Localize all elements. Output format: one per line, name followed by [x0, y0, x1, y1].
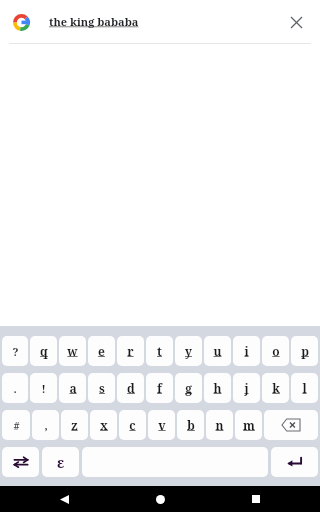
button[interactable]: Backspace	[264, 410, 318, 440]
button[interactable]: t	[146, 336, 173, 366]
button[interactable]: p	[291, 336, 318, 366]
staticText: n	[215, 417, 224, 433]
button[interactable]: ?	[2, 336, 28, 366]
staticText: l	[302, 380, 307, 396]
staticText: x	[100, 417, 108, 433]
button[interactable]: d	[117, 373, 144, 403]
staticText: z	[71, 417, 78, 433]
button[interactable]: y	[175, 336, 202, 366]
button[interactable]: m	[235, 410, 262, 440]
button[interactable]: h	[204, 373, 231, 403]
staticText: c	[129, 417, 136, 433]
staticText: t	[157, 343, 162, 359]
staticText: .	[13, 381, 17, 396]
button[interactable]: z	[61, 410, 88, 440]
button[interactable]: k	[262, 373, 289, 403]
staticText: m	[243, 417, 255, 433]
staticText: #	[13, 418, 20, 433]
staticText: !	[41, 381, 46, 396]
staticText: ,	[44, 418, 48, 433]
staticText: ɛ	[57, 453, 65, 472]
staticText: r	[127, 343, 134, 359]
staticText: u	[213, 343, 222, 359]
button[interactable]: i	[233, 336, 260, 366]
button[interactable]: ,	[32, 410, 59, 440]
button[interactable]: j	[233, 373, 260, 403]
staticText: the king bababa	[49, 14, 139, 29]
staticText: i	[244, 343, 249, 359]
button[interactable]: Enter	[271, 447, 318, 477]
button[interactable]: w	[59, 336, 86, 366]
button[interactable]: n	[206, 410, 233, 440]
button[interactable]: u	[204, 336, 231, 366]
staticText: j	[244, 380, 249, 396]
button[interactable]: r	[117, 336, 144, 366]
button[interactable]: #	[2, 410, 30, 440]
staticText: ?	[12, 344, 19, 359]
staticText: e	[98, 343, 105, 359]
staticText: y	[185, 343, 192, 359]
staticText: g	[185, 380, 192, 396]
button[interactable]: the king bababa	[49, 14, 282, 29]
staticText: d	[127, 380, 135, 396]
button[interactable]: Google	[11, 12, 31, 32]
button[interactable]: q	[30, 336, 57, 366]
button[interactable]: l	[291, 373, 318, 403]
button[interactable]: !	[30, 373, 57, 403]
button[interactable]: Recents	[243, 486, 269, 512]
button[interactable]: e	[88, 336, 115, 366]
button[interactable]: s	[88, 373, 115, 403]
button[interactable]: c	[119, 410, 146, 440]
staticText: k	[272, 380, 280, 396]
button[interactable]: Back	[51, 486, 77, 512]
button[interactable]: a	[59, 373, 86, 403]
staticText: h	[213, 380, 222, 396]
button[interactable]: Home	[147, 486, 173, 512]
staticText: o	[272, 343, 280, 359]
button[interactable]: b	[177, 410, 204, 440]
staticText: p	[301, 343, 309, 359]
staticText: b	[187, 417, 195, 433]
staticText: v	[158, 417, 166, 433]
button[interactable]: x	[90, 410, 117, 440]
staticText: f	[157, 380, 162, 396]
button[interactable]: Switch keyboard	[2, 447, 39, 477]
button[interactable]: v	[148, 410, 175, 440]
button[interactable]: .	[2, 373, 28, 403]
staticText: a	[69, 380, 77, 396]
button[interactable]: o	[262, 336, 289, 366]
button[interactable]: ɛ	[42, 447, 79, 477]
button[interactable]: Close	[282, 8, 310, 36]
button[interactable]: g	[175, 373, 202, 403]
staticText: s	[99, 380, 105, 396]
button[interactable]: f	[146, 373, 173, 403]
staticText: q	[40, 343, 48, 359]
staticText: w	[67, 343, 78, 359]
